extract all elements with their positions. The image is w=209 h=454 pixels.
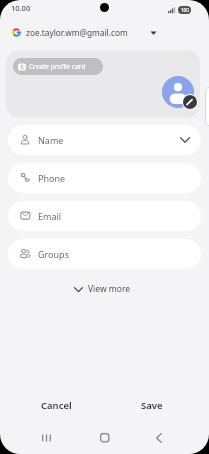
button[interactable]: Name [8,125,201,155]
button[interactable]: Groups [8,239,201,269]
button[interactable] [88,427,121,448]
button[interactable]: Create profile card [13,58,103,75]
staticText: Name [38,134,64,146]
button[interactable] [182,94,198,110]
button[interactable]: Email [8,201,201,231]
button[interactable]: Save [127,394,177,416]
staticText: View more [88,283,131,295]
staticText: Email [38,210,62,222]
button[interactable] [143,427,175,448]
staticText: Cancel [41,399,72,412]
button[interactable] [30,427,62,448]
staticText: zoe.taylor.wm@gmail.com [26,27,128,38]
button[interactable]: Cancel [30,394,82,416]
staticText: Create profile card [29,62,86,71]
staticText: 10.00 [11,3,31,13]
staticText: Groups [38,248,69,260]
button[interactable]: zoe.taylor.wm@gmail.com [6,24,166,40]
staticText: 100 [181,7,189,13]
staticText: Save [141,399,163,412]
staticText: Phone [38,172,66,184]
button[interactable]: View more [74,283,131,295]
button[interactable]: Phone [8,163,201,193]
